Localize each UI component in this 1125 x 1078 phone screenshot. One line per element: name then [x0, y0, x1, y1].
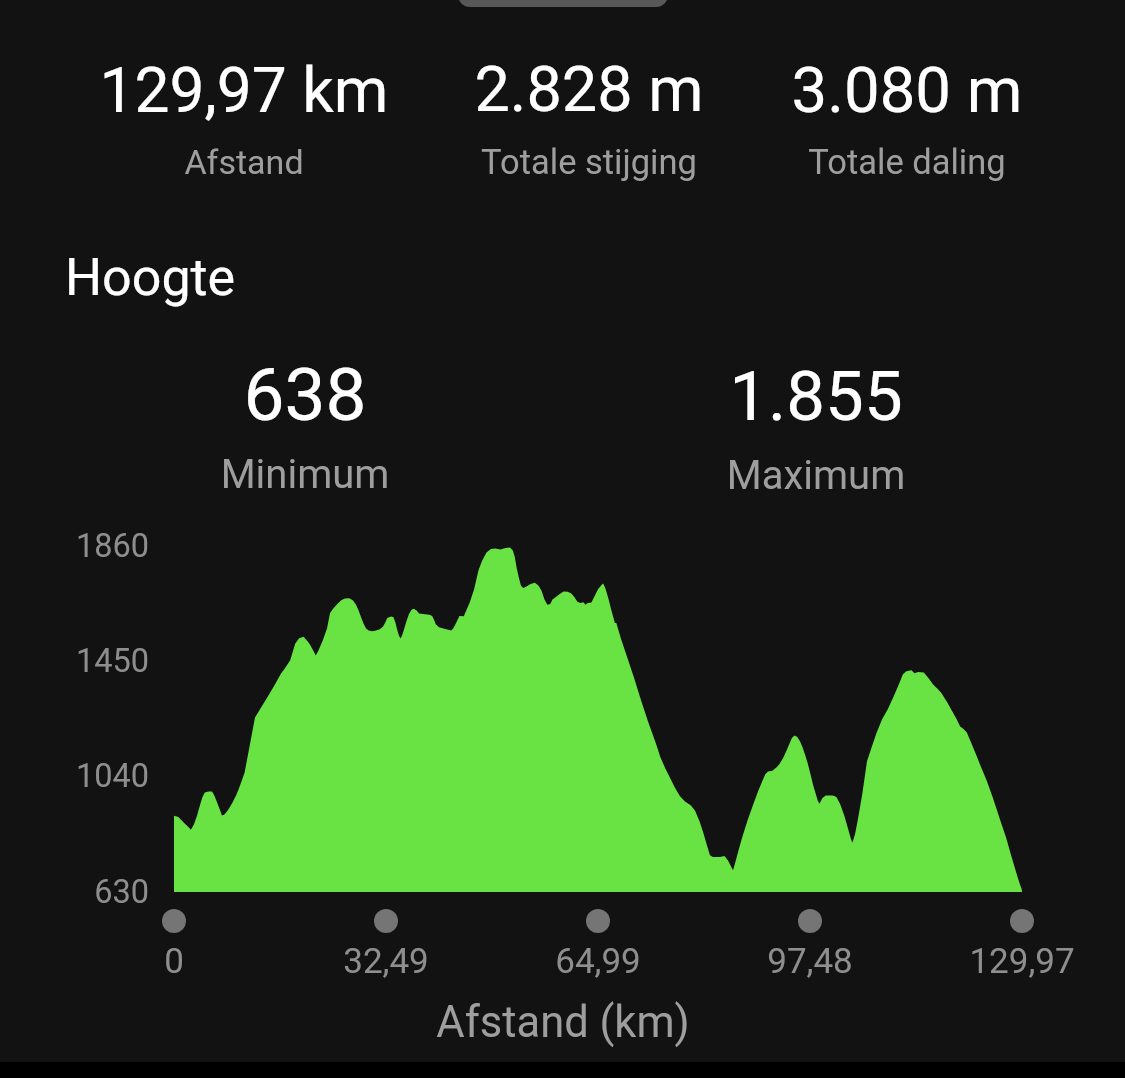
button[interactable]: Sleep om het paneel te verplaatsen: [458, 0, 668, 7]
staticText: 1040: [0, 757, 149, 795]
staticText: Minimum: [105, 451, 505, 498]
staticText: 630: [0, 873, 149, 911]
staticText: 129,97 km: [74, 54, 414, 127]
staticText: Maximum: [616, 452, 1016, 499]
staticText: 97,48: [510, 941, 1110, 982]
button[interactable]: 3.080 m: [737, 39, 1077, 188]
staticText: 64,99: [298, 941, 898, 982]
staticText: 638: [105, 352, 505, 438]
staticText: Afstand (km): [263, 997, 863, 1048]
button[interactable]: 638: [105, 338, 505, 503]
staticText: Totale stijging: [419, 142, 759, 182]
staticText: 0: [0, 941, 474, 982]
staticText: 1.855: [616, 356, 1016, 437]
button[interactable]: 1.855: [616, 342, 1016, 503]
staticText: 129,97: [722, 941, 1125, 982]
staticText: Afstand: [74, 142, 414, 182]
staticText: 1860: [0, 527, 149, 565]
staticText: 2.828 m: [419, 53, 759, 127]
other: Hoogteprofiel: [0, 0, 1125, 1078]
staticText: 3.080 m: [737, 53, 1077, 127]
button[interactable]: 129,97 km: [74, 40, 414, 188]
staticText: 32,49: [86, 941, 686, 982]
staticText: Totale daling: [737, 142, 1077, 182]
staticText: 1450: [0, 642, 149, 680]
staticText: Hoogte: [65, 247, 236, 308]
button[interactable]: 2.828 m: [419, 39, 759, 188]
